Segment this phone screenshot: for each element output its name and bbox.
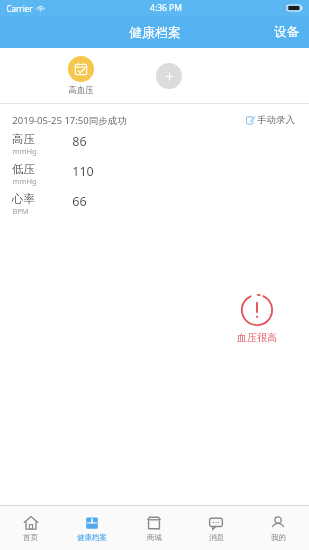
staticText: 高血压 xyxy=(68,85,94,96)
staticText: 商城 xyxy=(147,533,162,542)
staticText: 66 xyxy=(72,193,87,210)
button[interactable]: 健康档案 xyxy=(61,506,123,550)
button[interactable]: 手动录入 xyxy=(244,112,297,128)
staticText: 健康档案 xyxy=(129,24,181,40)
button[interactable]: 消息 xyxy=(185,506,247,550)
button[interactable]: 首页 xyxy=(0,506,61,550)
button[interactable]: 设备 xyxy=(264,18,309,46)
staticText: BPM xyxy=(12,206,29,216)
staticText: 手动录入 xyxy=(257,114,295,126)
button[interactable]: 商城 xyxy=(123,506,185,550)
staticText: 我的 xyxy=(271,533,286,542)
staticText: mmHg xyxy=(12,146,37,156)
staticText: 健康档案 xyxy=(77,533,107,542)
staticText: 消息 xyxy=(209,533,224,542)
staticText: 2019-05-25 17:50同步成功 xyxy=(12,114,127,127)
button[interactable]: 我的 xyxy=(247,506,309,550)
staticText: 110 xyxy=(72,163,94,180)
staticText: 低压 xyxy=(12,162,35,176)
staticText: 首页 xyxy=(23,533,38,542)
staticText: Carrier xyxy=(6,3,33,14)
staticText: mmHg xyxy=(12,176,37,186)
staticText: 高压 xyxy=(12,132,35,146)
staticText: 心率 xyxy=(12,192,35,206)
staticText: 设备 xyxy=(274,24,299,40)
staticText: 血压很高 xyxy=(237,331,277,344)
button[interactable]: Add record type xyxy=(156,63,182,89)
staticText: 4:36 PM xyxy=(150,2,182,14)
button[interactable]: 高血压 xyxy=(66,54,96,98)
staticText: 86 xyxy=(72,133,87,150)
